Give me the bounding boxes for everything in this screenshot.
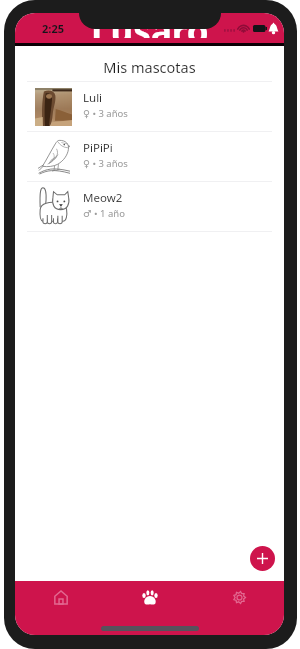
button[interactable]: Ajustes <box>195 587 284 607</box>
staticText: PiPiPi <box>83 140 113 156</box>
staticText: Luli <box>83 90 103 106</box>
staticText: ♀ • 3 años <box>83 157 128 170</box>
button[interactable]: Inicio <box>16 587 105 607</box>
staticText: ♂ • 1 año <box>83 207 125 220</box>
button[interactable]: PiPiPi <box>15 132 284 181</box>
staticText: Lusaro <box>91 13 209 38</box>
staticText: ♀ • 3 años <box>83 107 128 120</box>
button[interactable]: Agregar mascota <box>250 546 275 571</box>
button[interactable]: Meow2 <box>15 182 284 231</box>
staticText: 2:25 <box>42 21 64 36</box>
staticText: Meow2 <box>83 190 123 206</box>
button[interactable]: Mis mascotas <box>105 587 194 607</box>
button[interactable]: Luli <box>15 82 284 131</box>
staticText: Mis mascotas <box>15 57 284 77</box>
